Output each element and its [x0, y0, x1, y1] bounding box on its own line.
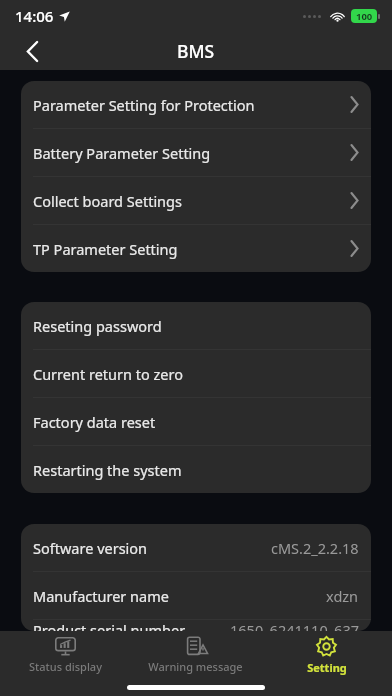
staticText: Collect board Settings: [33, 191, 182, 211]
staticText: Battery Parameter Setting: [33, 143, 211, 163]
button[interactable]: Restarting the system: [21, 446, 371, 493]
staticText: Restarting the system: [33, 460, 182, 480]
staticText: Factory data reset: [33, 412, 156, 432]
staticText: 1650_6241110_637: [230, 620, 359, 631]
button[interactable]: Reseting password: [21, 302, 371, 349]
staticText: Warning message: [148, 659, 243, 674]
staticText: TP Parameter Setting: [33, 239, 178, 259]
staticText: Setting: [307, 660, 347, 675]
staticText: Manufacturer name: [33, 586, 169, 606]
button[interactable]: Setting: [261, 631, 392, 679]
button[interactable]: Back: [14, 33, 50, 69]
staticText: Software version: [33, 538, 148, 558]
staticText: Current return to zero: [33, 364, 183, 384]
button[interactable]: Collect board Settings: [21, 177, 371, 224]
staticText: 100: [356, 10, 373, 23]
staticText: cMS.2_2.2.18: [271, 538, 359, 558]
button[interactable]: Battery Parameter Setting: [21, 129, 371, 176]
button[interactable]: Current return to zero: [21, 350, 371, 397]
staticText: BMS: [177, 39, 215, 63]
button[interactable]: Factory data reset: [21, 398, 371, 445]
staticText: Product serial number: [33, 620, 186, 631]
staticText: Parameter Setting for Protection: [33, 95, 255, 115]
button[interactable]: TP Parameter Setting: [21, 225, 371, 272]
button[interactable]: Warning message: [130, 631, 261, 679]
staticText: Status display: [29, 659, 102, 674]
staticText: 14:06: [15, 6, 54, 26]
button[interactable]: Parameter Setting for Protection: [21, 81, 371, 128]
staticText: Reseting password: [33, 316, 162, 336]
staticText: xdzn: [326, 586, 359, 606]
button[interactable]: Status display: [0, 631, 130, 679]
